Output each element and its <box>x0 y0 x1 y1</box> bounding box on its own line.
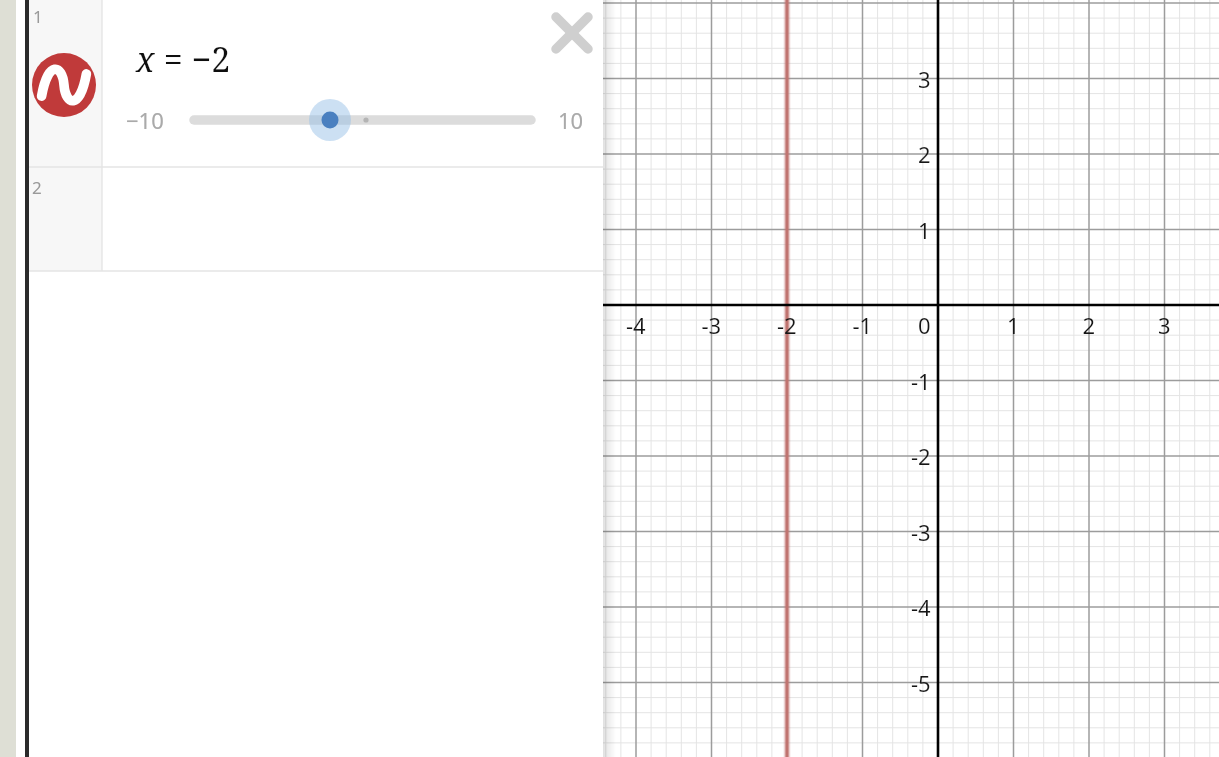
button[interactable]: Toggle graph visibility <box>29 50 99 120</box>
button[interactable]: Slider for a, value -2 <box>180 100 545 140</box>
button[interactable]: Graph paper <box>603 0 1219 757</box>
button[interactable] <box>102 0 603 167</box>
button[interactable]: Delete expression <box>548 9 596 57</box>
